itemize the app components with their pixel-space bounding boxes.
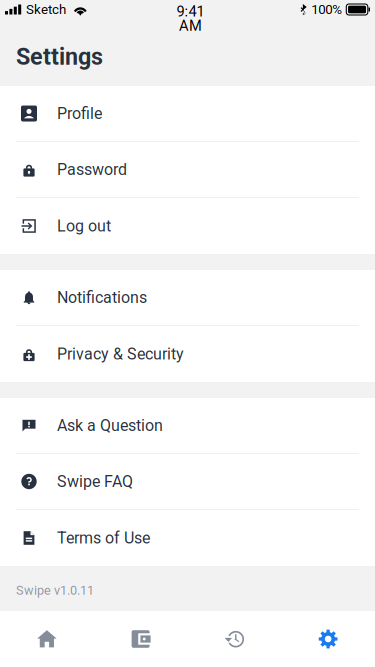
- button[interactable]: Swipe FAQ: [0, 454, 375, 510]
- staticText: Profile: [57, 104, 102, 123]
- staticText: Swipe FAQ: [57, 472, 133, 491]
- staticText: AM: [179, 17, 202, 34]
- staticText: Swipe v1.0.11: [16, 583, 94, 598]
- staticText: Sketch: [26, 2, 66, 17]
- button[interactable]: Password: [0, 142, 375, 198]
- staticText: Password: [57, 160, 127, 179]
- staticText: Privacy & Security: [57, 345, 184, 363]
- button[interactable]: Privacy & Security: [0, 326, 375, 382]
- button[interactable]: Ask a Question: [0, 398, 375, 454]
- staticText: Terms of Use: [57, 529, 150, 547]
- button[interactable]: History: [187, 611, 281, 667]
- button[interactable]: Settings: [281, 611, 375, 667]
- button[interactable]: Terms of Use: [0, 510, 375, 566]
- button[interactable]: Notifications: [0, 270, 375, 326]
- staticText: 9:41: [176, 3, 204, 20]
- staticText: Notifications: [57, 288, 147, 307]
- button[interactable]: Wallet: [94, 611, 188, 667]
- button[interactable]: Log out: [0, 198, 375, 254]
- button[interactable]: Profile: [0, 86, 375, 142]
- staticText: 100%: [311, 2, 342, 17]
- staticText: Ask a Question: [57, 416, 163, 435]
- staticText: Log out: [57, 217, 111, 235]
- button[interactable]: Home: [0, 611, 94, 667]
- staticText: Settings: [16, 43, 103, 70]
